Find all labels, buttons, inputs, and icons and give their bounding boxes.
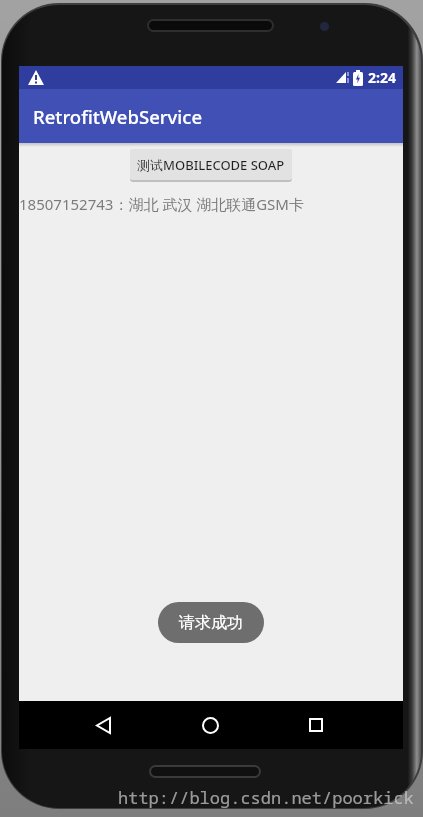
staticText: RetrofitWebService — [33, 104, 203, 129]
staticText: 18507152743：湖北 武汉 湖北联通GSM卡 — [19, 194, 304, 214]
button[interactable] — [190, 705, 230, 745]
button[interactable]: 测试MOBILECODE SOAP — [130, 149, 292, 180]
staticText: 请求成功 — [179, 613, 243, 633]
staticText: http://blog.csdn.net/poorkick — [118, 786, 414, 809]
button[interactable] — [296, 705, 336, 745]
staticText: 测试MOBILECODE SOAP — [137, 156, 285, 174]
button[interactable]: 请求成功 — [158, 602, 264, 643]
button[interactable] — [83, 705, 123, 745]
staticText: 2:24 — [368, 68, 396, 87]
